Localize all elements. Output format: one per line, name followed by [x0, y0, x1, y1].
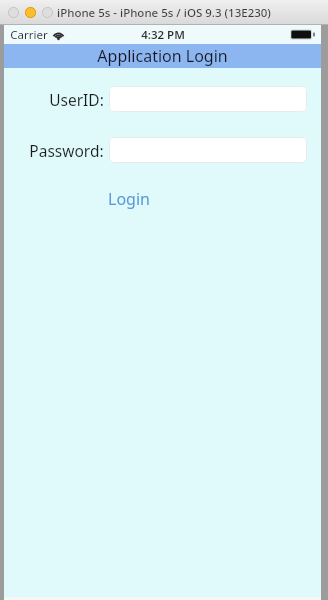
staticText: UserID: — [49, 89, 104, 110]
button[interactable]: Close window — [8, 7, 19, 18]
button[interactable]: Minimize window — [25, 7, 36, 18]
button[interactable]: Login — [108, 188, 150, 210]
staticText: Password: — [29, 140, 104, 161]
button[interactable]: Password input — [109, 137, 307, 163]
button[interactable]: UserID input — [109, 86, 307, 112]
staticText: Application Login — [97, 45, 228, 67]
staticText: Login — [108, 188, 150, 210]
staticText: 4:32 PM — [141, 27, 185, 43]
staticText: iPhone 5s - iPhone 5s / iOS 9.3 (13E230) — [57, 5, 271, 21]
button[interactable]: Maximize window — [42, 7, 53, 18]
staticText: Carrier — [10, 27, 48, 43]
